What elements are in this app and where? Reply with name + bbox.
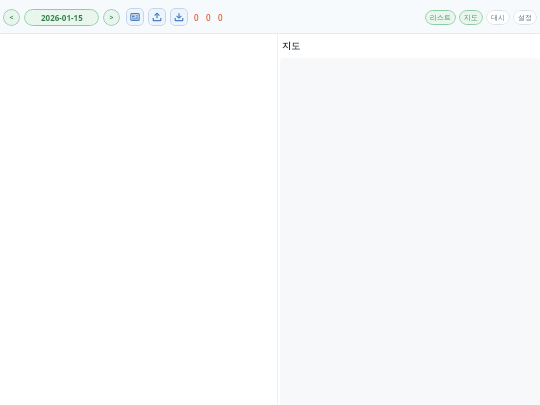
button[interactable]: 2026-01-15 <box>24 9 99 26</box>
staticText: 리스트 <box>430 13 451 22</box>
button[interactable]: Previous day <box>3 9 20 26</box>
staticText: 0 <box>194 12 199 23</box>
button[interactable]: Download <box>170 8 188 26</box>
button[interactable]: 리스트 <box>425 10 456 25</box>
staticText: 2026-01-15 <box>41 12 83 23</box>
staticText: < <box>9 13 14 23</box>
staticText: 0 <box>206 12 211 23</box>
button[interactable]: 지도 <box>459 10 483 25</box>
staticText: > <box>109 13 114 23</box>
button[interactable]: Upload <box>148 8 166 26</box>
button[interactable]: 대시 <box>486 10 510 25</box>
staticText: 대시 <box>491 13 505 22</box>
button[interactable]: Records <box>126 8 144 26</box>
staticText: 0 <box>218 12 223 23</box>
button[interactable]: 설정 <box>513 10 537 25</box>
staticText: 설정 <box>518 13 532 22</box>
button[interactable]: Next day <box>103 9 120 26</box>
staticText: 지도 <box>282 40 300 51</box>
staticText: 지도 <box>464 13 478 22</box>
